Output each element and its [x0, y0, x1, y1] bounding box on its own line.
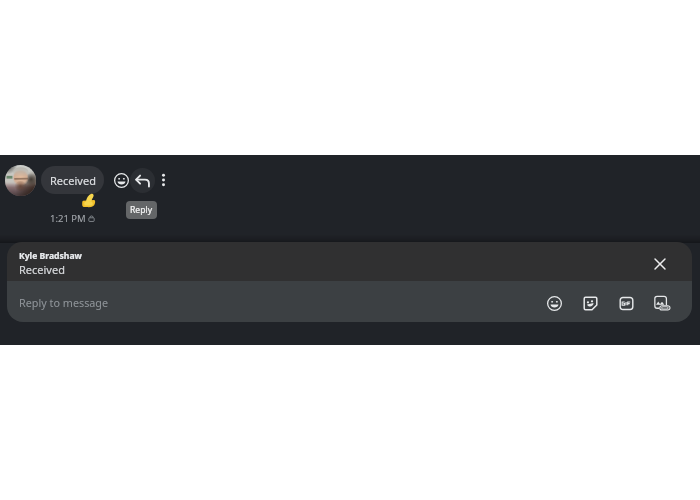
button[interactable]: Emoji: [542, 291, 566, 315]
button[interactable]: Contact photo: [5, 165, 36, 196]
staticText: Received: [50, 173, 96, 188]
staticText: 1:21 PM: [50, 212, 86, 225]
staticText: Received: [19, 262, 65, 277]
staticText: Kyle Bradshaw: [19, 250, 82, 262]
button[interactable]: Reply: [130, 168, 155, 193]
button[interactable]: Close: [648, 252, 672, 276]
button[interactable]: Received: [41, 166, 104, 194]
staticText: Reply: [130, 204, 153, 216]
button[interactable]: Add reaction: [108, 167, 134, 193]
button[interactable]: Attach: [650, 291, 674, 315]
button[interactable]: GIF: [614, 291, 638, 315]
staticText: Reply to message: [19, 295, 109, 310]
button[interactable]: More options: [152, 169, 174, 191]
button[interactable]: Reply to message: [7, 281, 692, 322]
button[interactable]: Stickers: [578, 291, 602, 315]
